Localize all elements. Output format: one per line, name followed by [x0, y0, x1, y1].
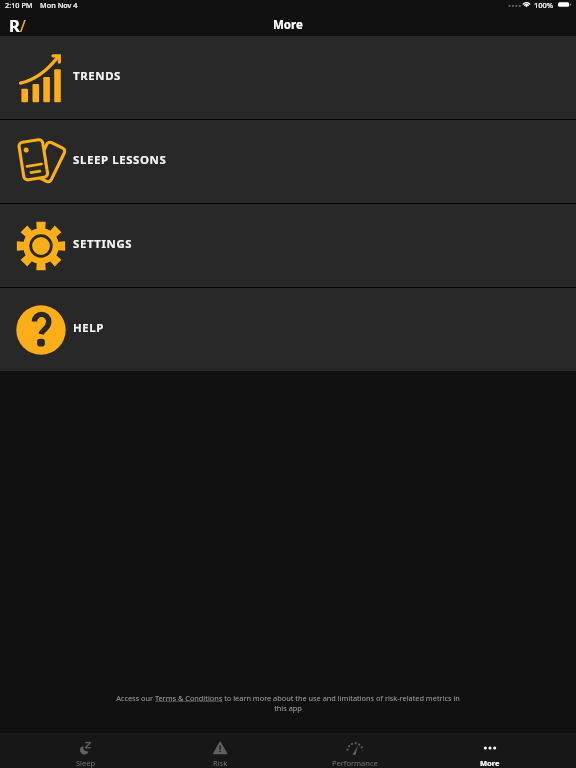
button[interactable]: Sleep [19, 733, 153, 768]
button[interactable]: Home [9, 14, 26, 36]
staticText: TRENDS [73, 68, 122, 84]
button[interactable]: TRENDS [0, 36, 576, 119]
button[interactable]: HELP [0, 288, 576, 371]
button[interactable]: Access our Terms & Conditions to learn m… [112, 693, 464, 714]
button[interactable]: More [422, 733, 557, 768]
staticText: Risk [213, 758, 228, 768]
staticText: More [480, 758, 500, 768]
button[interactable]: Performance [287, 733, 422, 768]
staticText: Mon Nov 4 [40, 0, 78, 10]
staticText: SLEEP LESSONS [73, 152, 167, 168]
staticText: Performance [332, 758, 378, 768]
staticText: More [273, 17, 303, 33]
staticText: 100% [534, 0, 554, 10]
button[interactable]: Risk [153, 733, 287, 768]
staticText: R/ [9, 14, 26, 36]
staticText: HELP [73, 320, 105, 336]
button[interactable]: SETTINGS [0, 204, 576, 287]
staticText: Sleep [76, 758, 96, 768]
staticText: SETTINGS [73, 236, 133, 252]
staticText: 2:10 PM [5, 0, 33, 10]
button[interactable]: SLEEP LESSONS [0, 120, 576, 203]
